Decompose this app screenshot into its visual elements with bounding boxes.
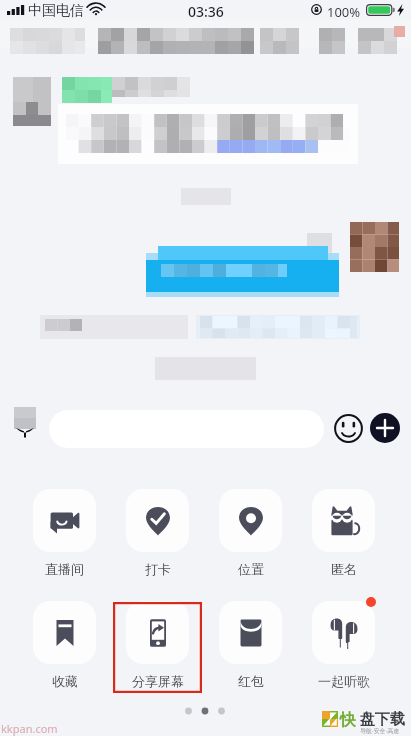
button[interactable]: 打卡 <box>126 489 189 577</box>
staticText: 中国电信 <box>28 2 84 20</box>
staticText: 匿名 <box>331 561 357 577</box>
staticText: 打卡 <box>145 561 171 577</box>
staticText: 快 <box>340 710 356 730</box>
button[interactable]: 分享屏幕 <box>126 601 189 689</box>
staticText: 盘下载 <box>360 710 405 729</box>
staticText: 100% <box>327 3 361 21</box>
staticText: 03:36 <box>188 2 224 21</box>
staticText: 导航·安全·高速 <box>360 727 400 735</box>
button[interactable]: 位置 <box>219 489 282 577</box>
button[interactable]: 收藏 <box>33 601 96 689</box>
staticText: 红包 <box>238 673 264 689</box>
staticText: 位置 <box>238 561 264 577</box>
staticText: 一起听歌 <box>318 673 370 689</box>
button[interactable]: 一起听歌 <box>312 601 375 689</box>
button[interactable]: 匿名 <box>312 489 375 577</box>
button[interactable]: Emoji <box>334 414 363 443</box>
staticText: 分享屏幕 <box>132 673 184 689</box>
staticText: kkpan.com <box>1 721 58 736</box>
button[interactable]: More functions <box>370 413 400 443</box>
staticText: 收藏 <box>52 673 78 689</box>
button[interactable]: 红包 <box>219 601 282 689</box>
staticText: 直播间 <box>45 561 84 577</box>
button[interactable]: 直播间 <box>33 489 96 577</box>
button[interactable]: Voice input <box>10 404 42 446</box>
